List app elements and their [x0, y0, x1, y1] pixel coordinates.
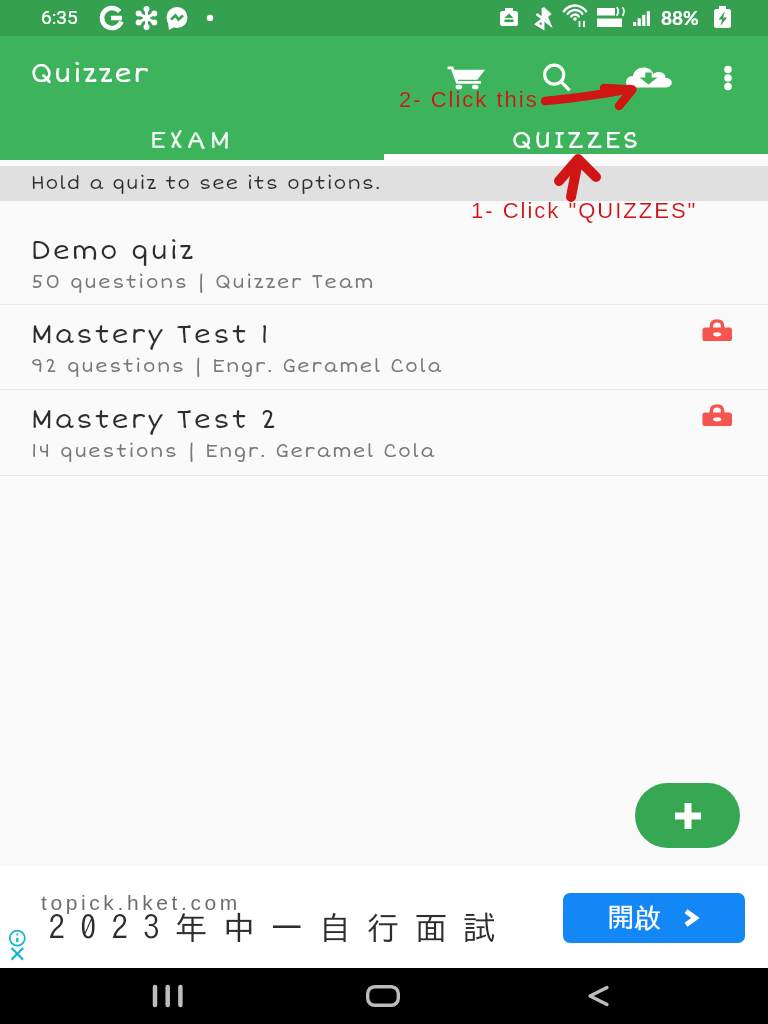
staticText: 88% — [661, 6, 699, 29]
staticText: Quizzer — [31, 58, 151, 90]
button[interactable]: Download — [622, 51, 676, 105]
staticText: 14 questions | Engr. Geramel Cola — [31, 439, 437, 462]
button[interactable]: Store — [439, 51, 493, 105]
button[interactable]: Recents — [136, 968, 200, 1024]
button[interactable]: Demo quiz — [0, 201, 768, 305]
staticText: Mastery Test 1 — [31, 319, 271, 351]
staticText: 92 questions | Engr. Geramel Cola — [31, 354, 443, 377]
staticText: 6:35 — [41, 6, 78, 28]
staticText: Hold a quiz to see its options. — [31, 171, 382, 194]
button[interactable]: Add quiz — [635, 783, 740, 848]
staticText: Mastery Test 2 — [31, 404, 279, 436]
button[interactable]: More options — [701, 51, 755, 105]
staticText: QUIZZES — [512, 126, 641, 156]
button[interactable]: Mastery Test 1 — [0, 305, 768, 390]
staticText: 1- Click "QUIZZES" — [471, 198, 698, 223]
button[interactable]: QUIZZES — [384, 122, 768, 160]
staticText: 50 questions | Quizzer Team — [31, 270, 375, 293]
button[interactable]: Mastery Test 2 — [0, 390, 768, 476]
staticText: Demo quiz — [31, 235, 196, 267]
button[interactable]: Home — [351, 968, 415, 1024]
staticText: topick.hket.com — [41, 891, 241, 914]
staticText: 2023年中一自行面試 — [41, 911, 503, 944]
staticText: 2- Click this — [399, 87, 539, 112]
staticText: EXAM — [150, 126, 235, 156]
button[interactable]: Search — [530, 51, 584, 105]
button[interactable]: 開啟 — [563, 893, 745, 943]
button[interactable]: Back — [566, 968, 630, 1024]
button[interactable]: EXAM — [0, 122, 384, 160]
staticText: 開啟 — [607, 901, 661, 935]
